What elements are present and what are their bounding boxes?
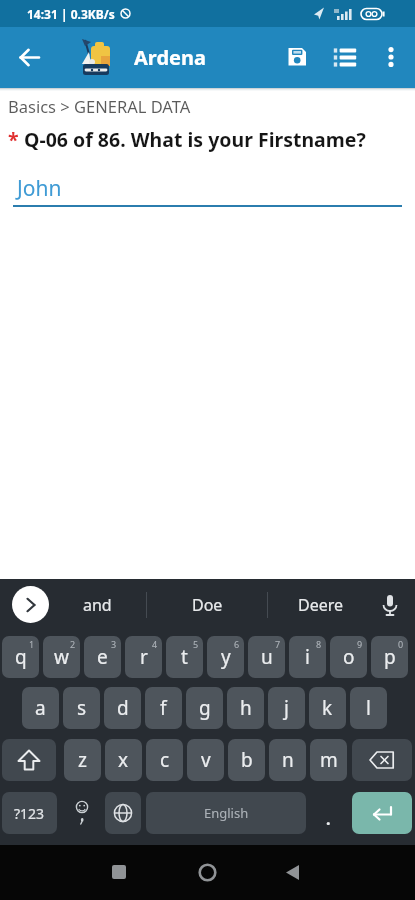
staticText: p — [384, 644, 396, 670]
staticText: s — [77, 695, 87, 721]
staticText: Ardena — [134, 44, 206, 71]
button[interactable]: q — [2, 636, 39, 678]
staticText: 3 — [111, 638, 117, 650]
staticText: d — [117, 695, 129, 721]
staticText: 1 — [29, 638, 35, 650]
staticText: Deere — [298, 594, 344, 616]
staticText: l — [366, 695, 371, 721]
button[interactable]: o — [330, 636, 367, 678]
staticText: o — [343, 644, 355, 670]
staticText: Q-06 of 86. What is your Firstname? — [24, 126, 366, 153]
button[interactable]: u — [248, 636, 285, 678]
button[interactable]: English — [146, 792, 306, 834]
staticText: 5 — [193, 638, 199, 650]
button[interactable]: f — [145, 687, 182, 729]
button[interactable] — [64, 792, 100, 834]
staticText: h — [240, 695, 252, 721]
button[interactable] — [277, 37, 317, 77]
button[interactable] — [325, 37, 365, 77]
button[interactable]: . — [310, 792, 346, 834]
staticText: 9 — [357, 638, 363, 650]
button[interactable]: m — [310, 739, 347, 781]
button[interactable] — [272, 852, 312, 892]
staticText: k — [322, 695, 333, 721]
button[interactable] — [12, 586, 49, 623]
button[interactable]: t — [166, 636, 203, 678]
button[interactable] — [105, 792, 141, 834]
button[interactable]: a — [22, 687, 59, 729]
staticText: y — [221, 644, 231, 670]
staticText: t — [181, 644, 188, 670]
staticText: Doe — [192, 594, 223, 616]
button[interactable]: s — [63, 687, 100, 729]
staticText: a — [35, 695, 46, 721]
staticText: i — [305, 644, 310, 670]
staticText: 0 — [398, 638, 404, 650]
staticText: ?123 — [14, 804, 45, 823]
staticText: John — [17, 174, 62, 203]
button[interactable]: ?123 — [2, 792, 57, 834]
staticText: b — [241, 747, 253, 773]
button[interactable] — [187, 852, 227, 892]
staticText: 2 — [70, 638, 76, 650]
button[interactable]: Deere — [277, 579, 365, 631]
staticText: e — [97, 644, 108, 670]
button[interactable]: b — [228, 739, 265, 781]
staticText: r — [140, 644, 148, 670]
button[interactable]: w — [43, 636, 80, 678]
button[interactable]: i — [289, 636, 326, 678]
button[interactable]: j — [268, 687, 305, 729]
staticText: 7 — [275, 638, 281, 650]
button[interactable]: and — [56, 579, 138, 631]
button[interactable]: h — [227, 687, 264, 729]
staticText: 14:31 | 0.3KB/s — [27, 6, 115, 22]
button[interactable]: c — [146, 739, 183, 781]
button[interactable]: z — [64, 739, 101, 781]
staticText: m — [320, 747, 338, 773]
staticText: and — [83, 594, 112, 616]
button[interactable] — [99, 852, 139, 892]
staticText: g — [199, 695, 211, 721]
button[interactable]: John — [13, 174, 62, 203]
staticText: q — [15, 644, 27, 670]
staticText: w — [54, 644, 69, 670]
button[interactable]: p — [371, 636, 408, 678]
staticText: * — [8, 126, 24, 153]
button[interactable]: d — [104, 687, 141, 729]
button[interactable]: e — [84, 636, 121, 678]
button[interactable]: v — [187, 739, 224, 781]
button[interactable]: x — [105, 739, 142, 781]
staticText: . — [326, 808, 331, 830]
button[interactable]: y — [207, 636, 244, 678]
staticText: j — [284, 695, 289, 721]
button[interactable] — [2, 739, 56, 781]
button[interactable]: n — [269, 739, 306, 781]
staticText: u — [261, 644, 273, 670]
staticText: 4 — [152, 638, 158, 650]
button[interactable] — [352, 739, 412, 781]
button[interactable]: Doe — [157, 579, 257, 631]
staticText: English — [204, 804, 249, 822]
button[interactable] — [371, 37, 411, 77]
button[interactable] — [352, 792, 412, 834]
staticText: n — [282, 747, 294, 773]
staticText: 6 — [234, 638, 240, 650]
button[interactable] — [374, 590, 406, 622]
button[interactable]: r — [125, 636, 162, 678]
staticText: f — [160, 695, 167, 721]
button[interactable]: k — [309, 687, 346, 729]
staticText: Basics > GENERAL DATA — [8, 95, 191, 117]
staticText: z — [78, 747, 87, 773]
staticText: c — [160, 747, 170, 773]
staticText: x — [118, 747, 129, 773]
button[interactable]: g — [186, 687, 223, 729]
button[interactable]: l — [350, 687, 387, 729]
staticText: 8 — [316, 638, 322, 650]
button[interactable] — [10, 37, 50, 77]
staticText: v — [201, 747, 211, 773]
